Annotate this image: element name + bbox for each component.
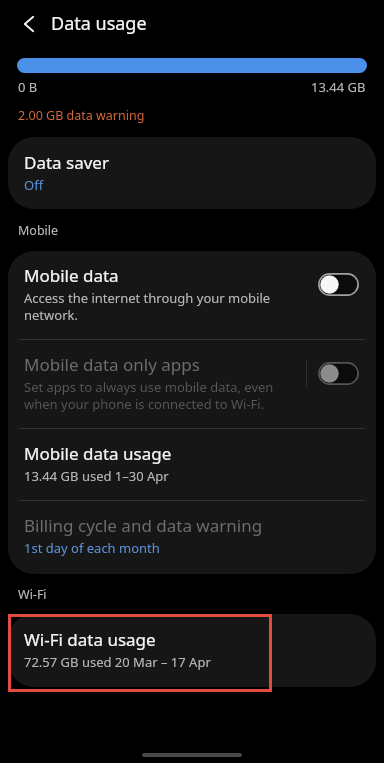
staticText: Set apps to always use mobile data, even… (24, 378, 300, 413)
staticText: Wi-Fi data usage (24, 628, 156, 651)
staticText: 0 B (18, 78, 38, 96)
staticText: Mobile data usage (24, 442, 172, 465)
button[interactable]: Back (10, 3, 48, 41)
staticText: Data saver (24, 151, 109, 174)
staticText: Mobile (18, 222, 59, 239)
staticText: Mobile data only apps (24, 353, 200, 376)
button[interactable]: Data saver (8, 137, 376, 209)
staticText: Access the internet through your mobile … (24, 289, 312, 324)
button[interactable]: Mobile data (8, 251, 376, 339)
button[interactable]: Wi-Fi data usage (8, 614, 376, 687)
button[interactable]: Mobile data usage (8, 429, 376, 500)
staticText: 72.57 GB used 20 Mar – 17 Apr (24, 653, 211, 671)
button[interactable]: Toggle (318, 273, 359, 296)
staticText: Off (24, 176, 44, 194)
staticText: 13.44 GB used 1–30 Apr (24, 467, 169, 485)
button[interactable]: Mobile data only apps (8, 340, 376, 428)
staticText: Mobile data (24, 264, 119, 287)
button[interactable]: Billing cycle and data warning (8, 501, 376, 574)
staticText: 13.44 GB (311, 78, 366, 96)
button[interactable]: Toggle (318, 362, 359, 385)
staticText: 2.00 GB data warning (18, 107, 145, 124)
staticText: Billing cycle and data warning (24, 514, 263, 537)
staticText: Wi-Fi (18, 586, 47, 603)
staticText: Data usage (51, 11, 147, 36)
staticText: 1st day of each month (24, 539, 160, 557)
